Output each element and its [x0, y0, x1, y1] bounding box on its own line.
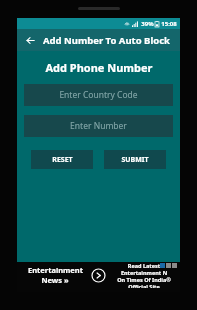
staticText: Enter Country Code: [59, 89, 138, 101]
button[interactable]: Advertisement: [17, 262, 180, 292]
staticText: Read Latest Entertainment N: [110, 262, 178, 276]
staticText: 39%: [141, 20, 154, 28]
staticText: Add Number To Auto Block: [43, 34, 170, 47]
button[interactable]: SUBMIT: [104, 150, 166, 169]
staticText: News »: [41, 275, 69, 285]
staticText: Enter Number: [70, 120, 127, 132]
staticText: SUBMIT: [121, 155, 149, 165]
button[interactable]: Enter Number: [24, 115, 173, 137]
staticText: Add Phone Number: [45, 60, 153, 75]
button[interactable]: Enter Country Code: [24, 84, 173, 106]
staticText: 15:08: [161, 20, 177, 28]
staticText: Entertainment: [28, 265, 83, 275]
staticText: On Times Of India® Official Site: [110, 276, 178, 288]
button[interactable]: Back: [22, 32, 38, 48]
button[interactable]: RESET: [31, 150, 93, 169]
staticText: RESET: [52, 155, 73, 165]
